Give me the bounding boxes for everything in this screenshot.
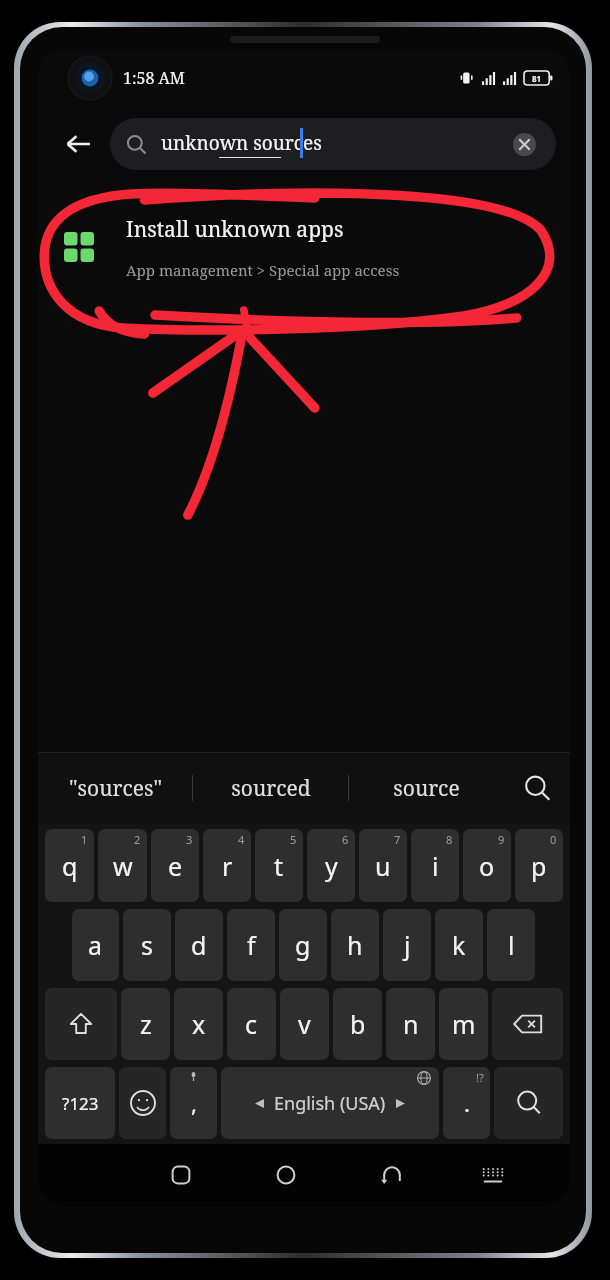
staticText: b [350, 1007, 366, 1041]
button[interactable]: i [411, 829, 459, 902]
button[interactable]: Search suggestions [504, 752, 570, 824]
staticText: q [62, 849, 78, 883]
button[interactable]: h [331, 909, 379, 981]
button[interactable]: r [203, 829, 251, 902]
button[interactable]: Back [339, 1144, 445, 1206]
staticText: 1:58 AM [123, 67, 185, 89]
button[interactable]: j [383, 909, 431, 981]
staticText: App management > Special app access [126, 260, 400, 280]
button[interactable]: n [386, 988, 435, 1060]
staticText: 9 [498, 832, 505, 847]
staticText: t [274, 849, 284, 883]
button[interactable]: Install unknown apps [38, 182, 570, 312]
button[interactable]: sourced [193, 752, 348, 824]
button[interactable]: , [170, 1067, 217, 1139]
button[interactable]: Recents [128, 1144, 233, 1206]
staticText: y [325, 849, 338, 883]
staticText: x [192, 1007, 206, 1041]
staticText: source [393, 774, 460, 803]
staticText: i [432, 849, 439, 883]
staticText: r [222, 849, 233, 883]
button[interactable]: Home [233, 1144, 339, 1206]
button[interactable]: source [349, 752, 504, 824]
staticText: z [140, 1007, 152, 1041]
staticText: "sources" [69, 774, 162, 803]
staticText: h [347, 928, 363, 962]
staticText: f [247, 928, 256, 962]
staticText: m [452, 1007, 476, 1041]
staticText: l [508, 928, 515, 962]
staticText: 81 [532, 73, 542, 84]
staticText: unknown sources [161, 130, 322, 156]
staticText: a [88, 928, 103, 962]
button[interactable]: k [435, 909, 483, 981]
button[interactable]: u [359, 829, 407, 902]
button[interactable]: "sources" [38, 752, 192, 824]
staticText: k [452, 928, 466, 962]
button[interactable]: f [227, 909, 275, 981]
staticText: 4 [238, 832, 245, 847]
button[interactable]: Shift [45, 988, 117, 1060]
button[interactable]: w [98, 829, 147, 902]
staticText: u [375, 849, 391, 883]
staticText: 8 [446, 832, 453, 847]
button[interactable]: v [280, 988, 329, 1060]
button[interactable]: a [72, 909, 119, 981]
staticText: 3 [186, 832, 193, 847]
button[interactable]: e [151, 829, 199, 902]
button[interactable]: c [227, 988, 276, 1060]
staticText: Install unknown apps [126, 215, 344, 244]
button[interactable]: English (USA) [221, 1067, 439, 1139]
staticText: n [403, 1007, 419, 1041]
button[interactable]: ?123 [45, 1067, 115, 1139]
button[interactable]: Search [494, 1067, 563, 1139]
button[interactable]: Backspace [492, 988, 563, 1060]
staticText: o [479, 849, 495, 883]
staticText: g [295, 928, 311, 962]
button[interactable]: x [174, 988, 223, 1060]
staticText: v [298, 1007, 311, 1041]
staticText: 2 [134, 832, 141, 847]
button[interactable]: p [515, 829, 563, 902]
button[interactable]: m [439, 988, 488, 1060]
staticText: c [245, 1007, 258, 1041]
staticText: ?123 [62, 1092, 99, 1115]
button[interactable]: g [279, 909, 327, 981]
staticText: 1 [81, 832, 88, 847]
staticText: 0 [550, 832, 557, 847]
button[interactable]: Hide keyboard [445, 1144, 540, 1206]
staticText: 7 [394, 832, 401, 847]
button[interactable]: unknown sources [110, 118, 556, 170]
staticText: , [191, 1088, 197, 1118]
staticText: e [168, 849, 183, 883]
staticText: 6 [342, 832, 349, 847]
button[interactable]: d [175, 909, 223, 981]
button[interactable]: Clear text [508, 128, 540, 160]
staticText: 5 [290, 832, 297, 847]
button[interactable]: y [307, 829, 355, 902]
staticText: w [113, 849, 133, 883]
button[interactable]: q [45, 829, 94, 902]
button[interactable]: . [443, 1067, 490, 1139]
button[interactable]: Emoji [119, 1067, 166, 1139]
button[interactable]: Back [52, 118, 104, 170]
button[interactable]: b [333, 988, 382, 1060]
button[interactable]: o [463, 829, 511, 902]
staticText: p [531, 849, 547, 883]
button[interactable]: s [123, 909, 171, 981]
button[interactable]: t [255, 829, 303, 902]
staticText: j [404, 928, 411, 962]
staticText: English (USA) [274, 1091, 386, 1116]
staticText: !? [476, 1070, 484, 1085]
button[interactable]: z [121, 988, 170, 1060]
button[interactable]: l [487, 909, 535, 981]
staticText: . [464, 1088, 470, 1118]
staticText: d [191, 928, 207, 962]
staticText: sourced [231, 774, 311, 803]
staticText: s [141, 928, 153, 962]
